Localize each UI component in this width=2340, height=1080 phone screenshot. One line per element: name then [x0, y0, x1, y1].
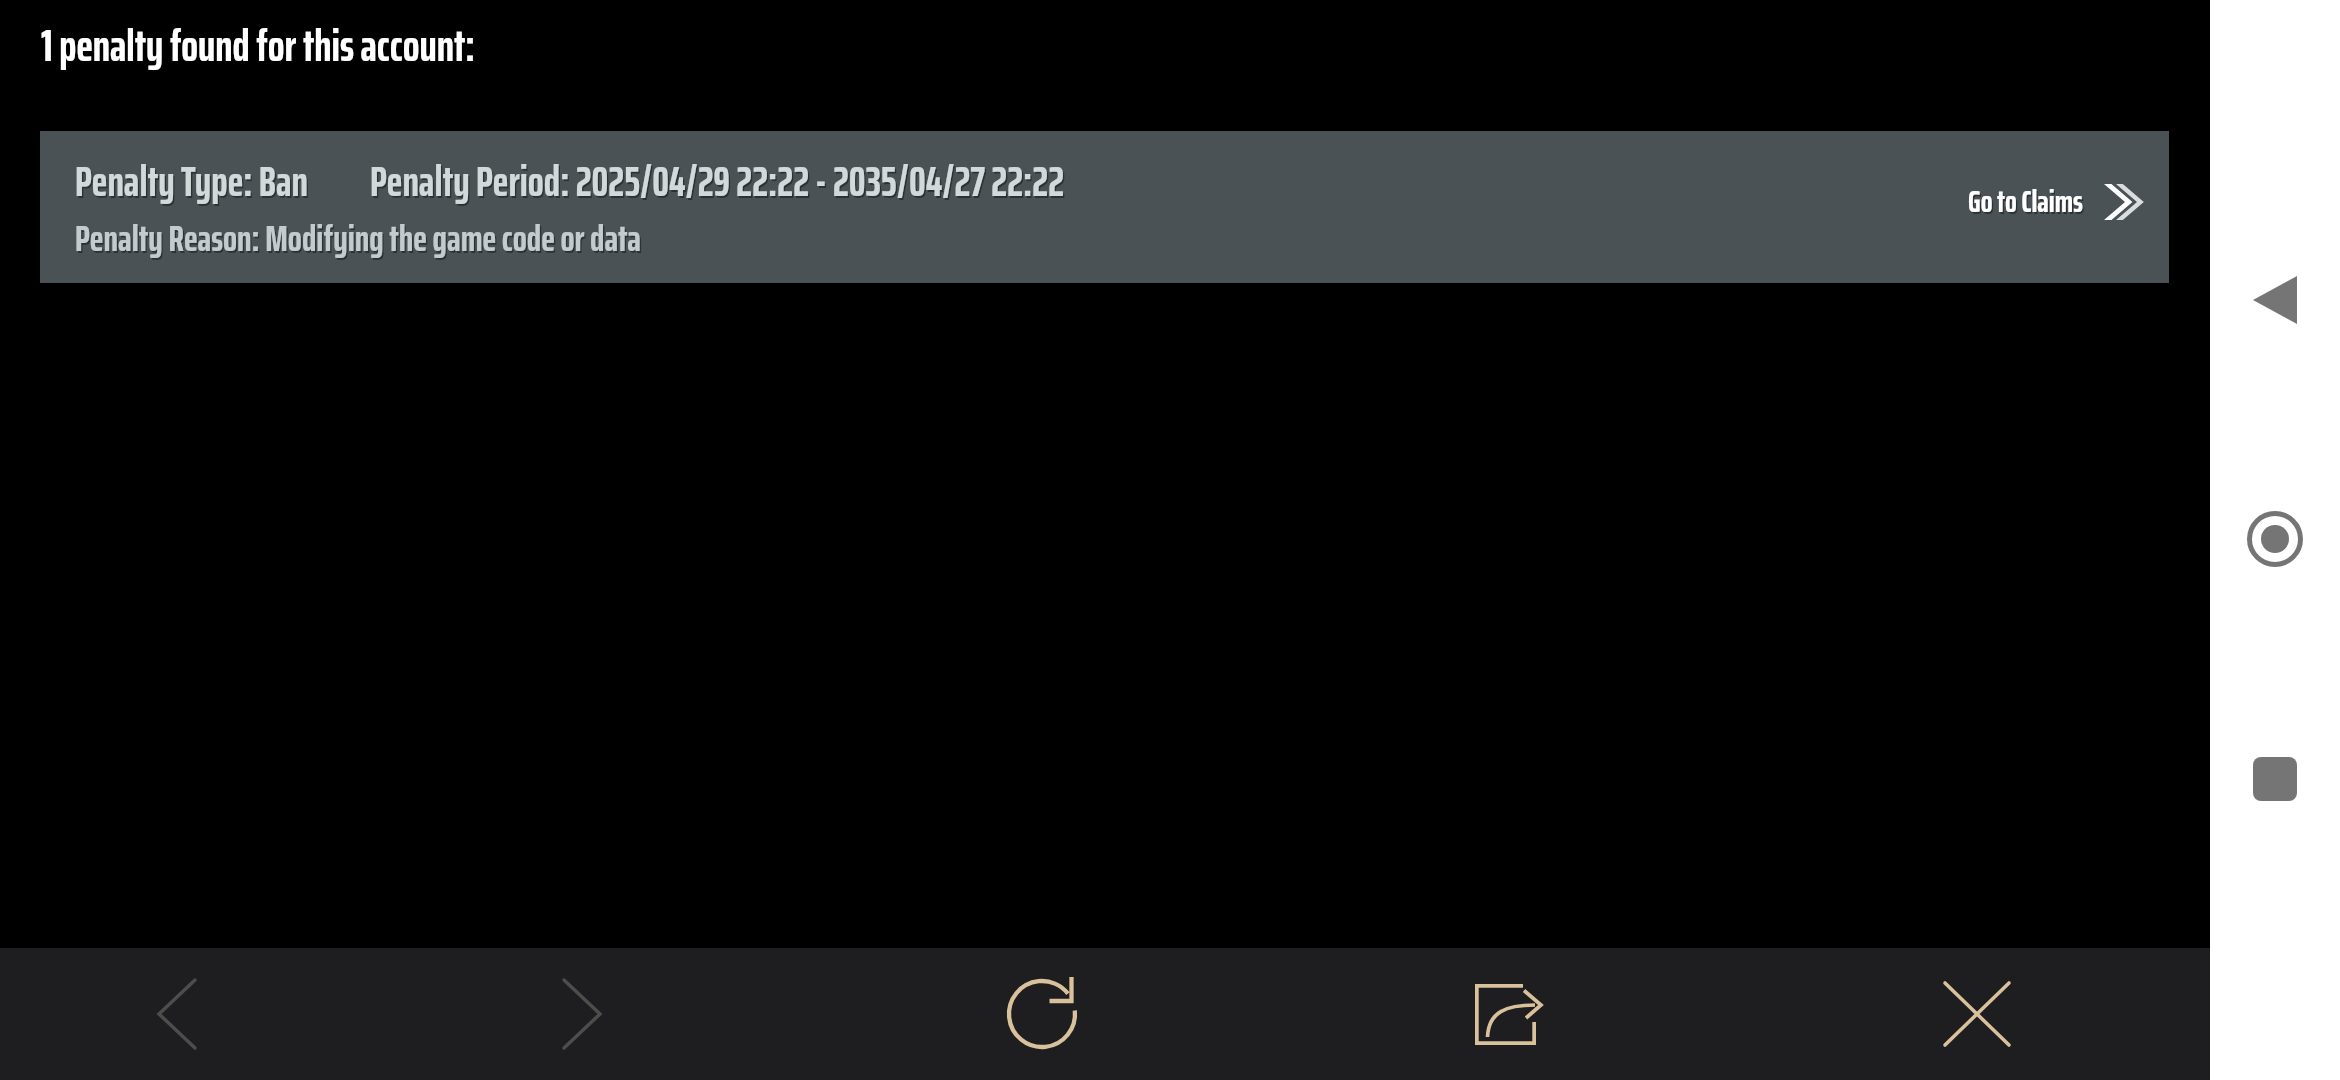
button[interactable]: Go to Claims — [1968, 177, 2138, 226]
button[interactable]: Forward — [516, 948, 648, 1080]
button[interactable]: Back — [111, 948, 243, 1080]
staticText: Penalty Period: 2025/04/29 22:22 - 2035/… — [370, 148, 1065, 214]
button[interactable]: Refresh — [979, 948, 1111, 1080]
button[interactable]: Recents — [2230, 734, 2320, 824]
staticText: Penalty Reason: Modifying the game code … — [75, 209, 641, 267]
button[interactable]: Back — [2230, 255, 2320, 345]
button[interactable]: Home — [2230, 494, 2320, 584]
button[interactable]: Close — [1911, 948, 2043, 1080]
staticText: 1 penalty found for this account: — [41, 11, 475, 80]
button[interactable]: Share — [1442, 948, 1574, 1080]
staticText: Penalty Type: Ban — [75, 148, 308, 214]
button[interactable]: Penalty Type: Ban — [40, 131, 2169, 283]
staticText: Go to Claims — [1968, 177, 2083, 226]
